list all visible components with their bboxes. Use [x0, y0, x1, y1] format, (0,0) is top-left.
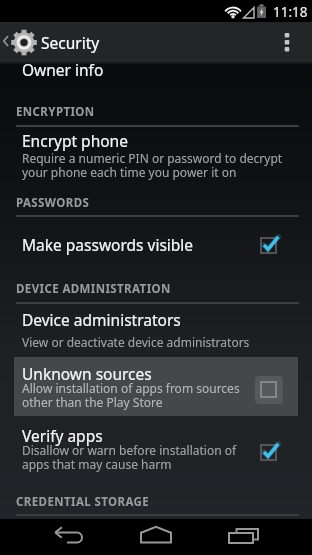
- button[interactable]: [0, 22, 42, 60]
- staticText: Unknown sources: [22, 363, 152, 384]
- button[interactable]: [214, 514, 274, 550]
- button[interactable]: [14, 357, 298, 416]
- staticText: Encrypt phone: [22, 130, 128, 151]
- button[interactable]: [0, 218, 312, 274]
- staticText: apps that may cause harm: [22, 456, 172, 472]
- staticText: Make passwords visible: [22, 234, 194, 255]
- button[interactable]: [0, 305, 312, 357]
- staticText: Allow installation of apps from sources: [22, 380, 240, 396]
- button[interactable]: [126, 514, 186, 550]
- staticText: Require a numeric PIN or password to dec…: [22, 150, 283, 166]
- button[interactable]: [272, 22, 312, 60]
- staticText: View or deactivate device administrators: [22, 334, 250, 350]
- staticText: 11:18: [273, 3, 308, 21]
- staticText: ENCRYPTION: [16, 104, 95, 120]
- staticText: Device administrators: [22, 309, 181, 330]
- staticText: PASSWORDS: [16, 195, 90, 211]
- staticText: CREDENTIAL STORAGE: [16, 494, 150, 510]
- staticText: Security: [41, 32, 100, 53]
- staticText: your phone each time you power it on: [22, 164, 237, 180]
- staticText: Verify apps: [22, 425, 103, 446]
- button[interactable]: [38, 514, 98, 550]
- staticText: Disallow or warn before installation of: [22, 442, 237, 458]
- staticText: DEVICE ADMINISTRATION: [16, 281, 171, 297]
- staticText: Owner info: [22, 59, 104, 80]
- button[interactable]: [0, 416, 312, 478]
- button[interactable]: [0, 60, 312, 86]
- staticText: other than the Play Store: [22, 394, 163, 410]
- button[interactable]: [0, 128, 312, 190]
